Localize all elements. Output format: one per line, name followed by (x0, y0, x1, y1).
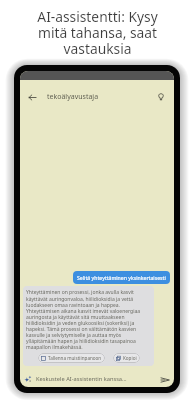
staticText: AI-assistentti: Kysy mitä tahansa, saat … (25, 7, 170, 58)
button[interactable]: Assist (23, 374, 33, 384)
button[interactable]: Selitä yhteyttäminen yksinkertaisesti (73, 271, 170, 284)
staticText: Kopioi (123, 355, 137, 361)
staticText: Yhteyttäminen on prosessi, jonka avulla … (26, 289, 151, 351)
button[interactable]: Back (24, 89, 40, 105)
button[interactable]: Send (159, 374, 170, 385)
staticText: Keskustele AI-assistentin kanssa... (36, 375, 127, 383)
staticText: tekoälyavustaja (47, 92, 99, 102)
staticText: Tallenna muistiinpanoon (48, 355, 102, 361)
staticText: Selitä yhteyttäminen yksinkertaisesti (77, 274, 166, 281)
button[interactable]: Ideas (153, 89, 169, 105)
button[interactable]: Yhteyttäminen on prosessi, jonka avulla … (23, 286, 154, 366)
button[interactable]: Tallenna muistiinpanoon (38, 353, 105, 363)
button[interactable]: Kopioi (113, 353, 140, 363)
